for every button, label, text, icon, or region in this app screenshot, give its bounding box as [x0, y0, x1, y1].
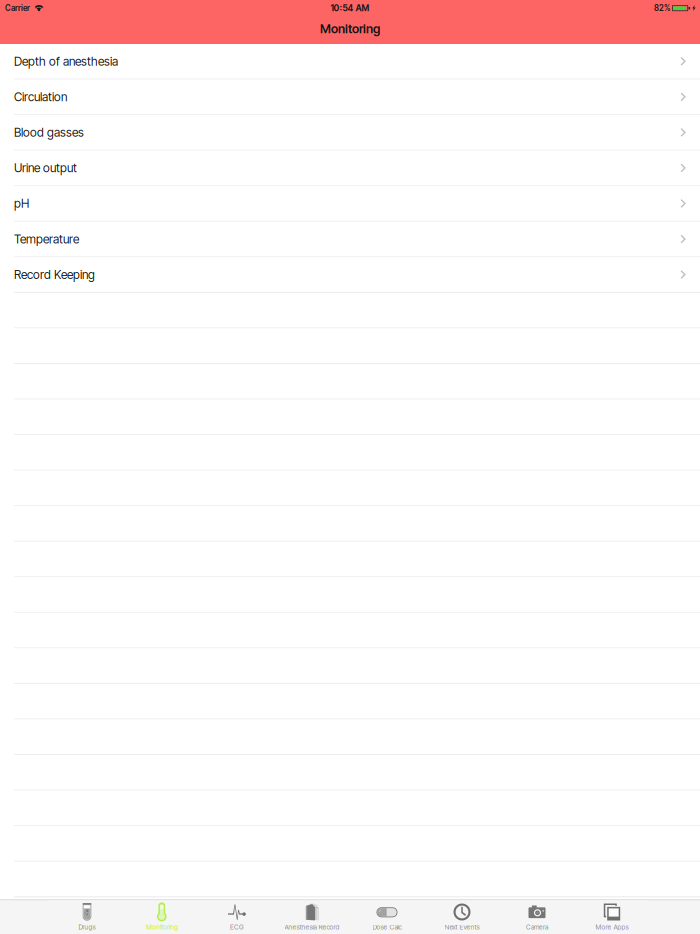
button[interactable]: ECG [199, 900, 274, 934]
staticText: Drugs [78, 923, 95, 931]
staticText: Depth of anesthesia [14, 54, 118, 68]
staticText: Urine output [14, 161, 77, 175]
button[interactable]: Drugs [49, 900, 124, 934]
button[interactable]: Record Keeping [0, 257, 700, 293]
staticText: 82% [654, 3, 670, 13]
staticText: Monitoring [146, 923, 178, 931]
button[interactable]: Depth of anesthesia [0, 44, 700, 79]
button[interactable]: More Apps [574, 900, 649, 934]
button[interactable]: Monitoring [124, 900, 199, 934]
button[interactable]: Blood gasses [0, 115, 700, 151]
staticText: ECG [230, 923, 244, 931]
staticText: Monitoring [320, 21, 380, 36]
button[interactable]: Next Events [424, 900, 499, 934]
button[interactable]: Urine output [0, 151, 700, 186]
staticText: Anesthesia Record [284, 923, 339, 931]
staticText: Record Keeping [14, 267, 95, 282]
staticText: Carrier [5, 3, 30, 13]
staticText: Dose Calc [372, 923, 401, 931]
button[interactable]: Camera [499, 900, 574, 934]
staticText: Camera [526, 923, 548, 931]
button[interactable]: Anesthesia Record [274, 900, 349, 934]
button[interactable]: pH [0, 186, 700, 222]
button[interactable]: Dose Calc [349, 900, 424, 934]
staticText: Blood gasses [14, 125, 84, 140]
button[interactable]: Temperature [0, 222, 700, 257]
staticText: Temperature [14, 232, 79, 246]
staticText: Circulation [14, 90, 67, 104]
staticText: Next Events [444, 923, 479, 931]
button[interactable]: Circulation [0, 79, 700, 115]
staticText: pH [14, 196, 29, 211]
staticText: 10:54 AM [330, 3, 369, 13]
staticText: More Apps [595, 923, 628, 931]
